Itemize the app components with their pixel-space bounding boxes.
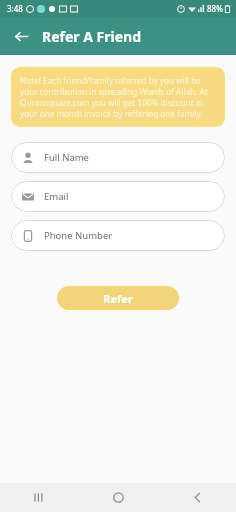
staticText: Email bbox=[44, 190, 69, 203]
button[interactable]: Home bbox=[96, 483, 140, 512]
staticText: Phone Number bbox=[44, 229, 113, 242]
staticText: 3:48 bbox=[7, 3, 23, 14]
button[interactable]: Back bbox=[175, 483, 219, 512]
button[interactable]: Refer bbox=[57, 286, 179, 310]
staticText: Full Name bbox=[44, 151, 89, 164]
button[interactable]: Phone Number bbox=[11, 220, 225, 251]
staticText: 88% bbox=[207, 3, 223, 14]
button[interactable]: Recent apps bbox=[17, 483, 61, 512]
button[interactable]: Full Name bbox=[11, 142, 225, 173]
button[interactable]: Back bbox=[8, 23, 34, 49]
staticText: Refer bbox=[103, 291, 133, 306]
staticText: Refer A Friend bbox=[42, 27, 141, 46]
button[interactable]: Email bbox=[11, 181, 225, 212]
staticText: Note! Each friend/family referred by you… bbox=[20, 75, 216, 119]
